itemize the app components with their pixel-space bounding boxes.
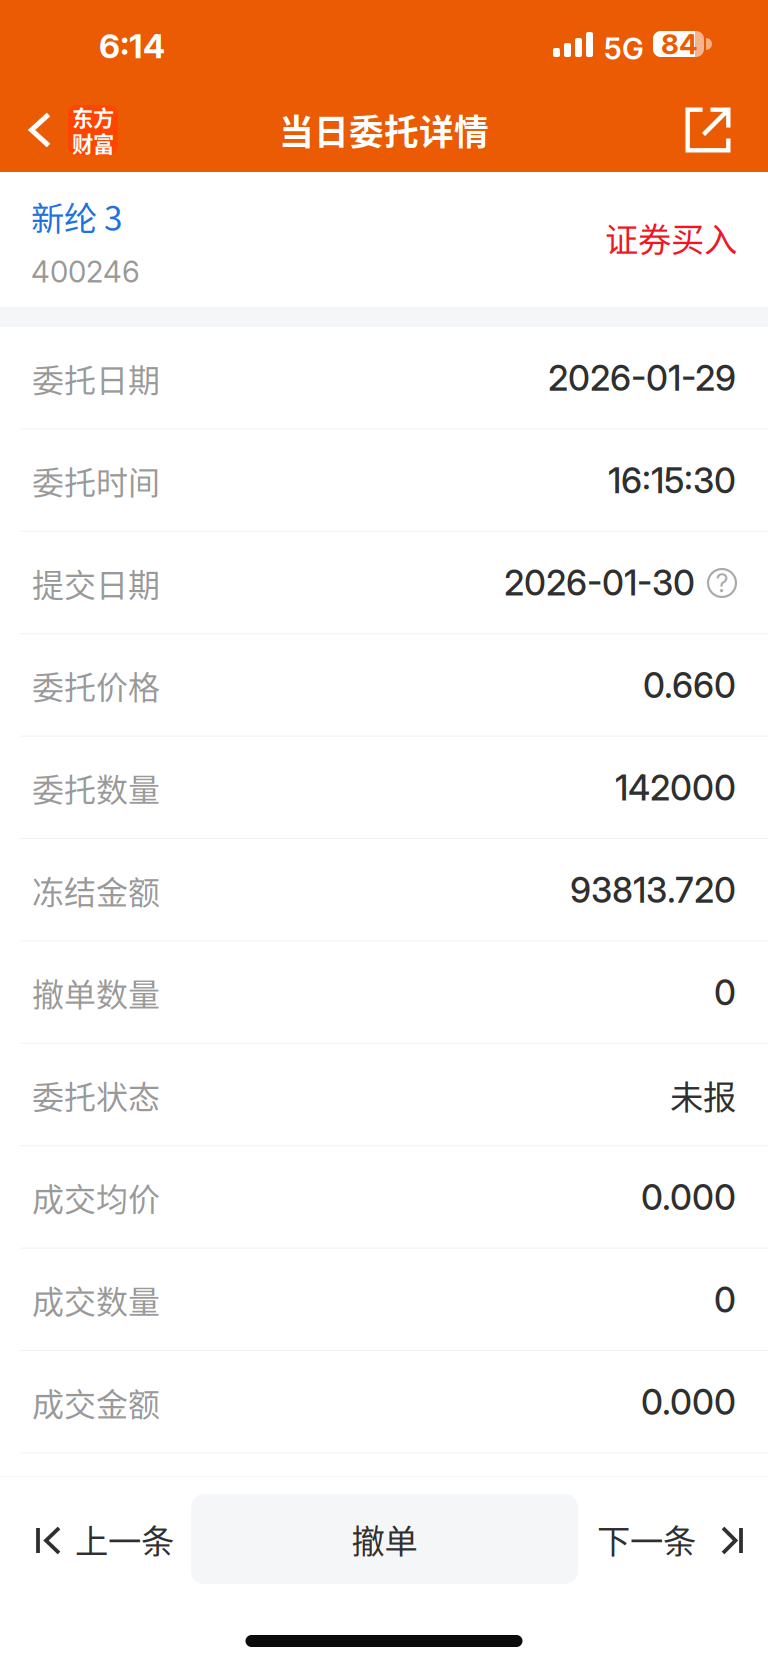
staticText: 0 xyxy=(714,972,736,1013)
staticText: 当日委托详情 xyxy=(279,105,489,155)
button[interactable]: Back xyxy=(0,88,136,172)
staticText: 0.660 xyxy=(643,664,736,706)
staticText: 16:15:30 xyxy=(608,460,736,501)
staticText: 84 xyxy=(661,27,698,61)
staticText: 6:14 xyxy=(99,26,165,66)
staticText: 财富 xyxy=(72,127,114,158)
staticText: 新纶 3 xyxy=(31,192,123,240)
staticText: 成交均价 xyxy=(32,1174,160,1220)
staticText: 委托价格 xyxy=(32,662,160,708)
staticText: 0 xyxy=(714,1279,736,1321)
button[interactable]: 撤单 xyxy=(191,1494,578,1584)
staticText: 冻结金额 xyxy=(32,867,160,913)
staticText: 成交金额 xyxy=(32,1379,160,1425)
staticText: 委托数量 xyxy=(32,765,160,811)
staticText: 撤单 xyxy=(351,1515,417,1563)
button[interactable]: 下一条 xyxy=(578,1494,768,1584)
button[interactable]: Share xyxy=(666,88,750,172)
staticText: 委托时间 xyxy=(32,457,160,504)
staticText: 东方 xyxy=(72,102,114,132)
staticText: 0.000 xyxy=(641,1381,736,1423)
button[interactable]: About submit date xyxy=(695,569,736,597)
staticText: 委托日期 xyxy=(32,355,160,401)
staticText: 证券买入 xyxy=(605,213,737,261)
staticText: 成交数量 xyxy=(32,1277,160,1323)
staticText: 93813.720 xyxy=(570,869,736,911)
staticText: 2026-01-30 xyxy=(504,562,695,604)
staticText: 下一条 xyxy=(597,1515,696,1563)
staticText: 0.000 xyxy=(641,1176,736,1218)
staticText: 上一条 xyxy=(75,1515,174,1563)
staticText: 2026-01-29 xyxy=(548,357,736,399)
staticText: 未报 xyxy=(670,1071,736,1119)
staticText: 5G xyxy=(604,31,644,66)
staticText: 400246 xyxy=(31,254,140,289)
button[interactable]: 上一条 xyxy=(0,1494,191,1584)
staticText: 撤单数量 xyxy=(32,969,160,1016)
staticText: ? xyxy=(715,568,728,598)
staticText: 委托状态 xyxy=(32,1072,160,1118)
staticText: 142000 xyxy=(615,767,736,809)
staticText: 提交日期 xyxy=(32,560,160,606)
